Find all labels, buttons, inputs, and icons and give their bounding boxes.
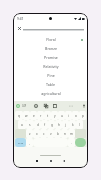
staticText: z [29,132,31,136]
staticText: e [33,114,35,118]
staticText: u [61,114,63,118]
button[interactable]: Close [16,25,23,32]
button[interactable]: ?123 [15,138,26,147]
button[interactable]: . [68,138,75,147]
staticText: , [29,141,30,145]
button[interactable]: Home [48,158,54,164]
staticText: m [70,132,73,136]
staticText: agricultural [41,91,61,96]
button[interactable]: d [34,120,41,129]
button[interactable]: Gboard [16,104,20,108]
staticText: g [51,123,53,127]
button[interactable]: Voice input [82,104,86,108]
staticText: h [58,123,60,127]
staticText: . [71,141,72,145]
button[interactable]: More options [69,104,73,108]
staticText: i [68,114,69,118]
button[interactable]: n [61,129,68,138]
staticText: 9:41 [17,17,24,21]
button[interactable]: e [30,111,37,120]
button[interactable]: u [58,111,65,120]
button[interactable]: l [76,120,83,129]
staticText: a [21,123,23,127]
button[interactable]: Enter [75,138,86,147]
staticText: t [47,114,49,118]
staticText: q [18,114,20,118]
button[interactable]: t [44,111,51,120]
button[interactable]: Back [61,158,67,164]
button[interactable]: p [79,111,86,120]
button[interactable]: Emoji [34,104,38,108]
staticText: ?123 [18,141,24,144]
button[interactable]: Pine [14,71,87,80]
staticText: Pine [47,73,55,78]
staticText: Relativity [43,64,59,69]
staticText: p [82,114,84,118]
staticText: GIF [22,104,27,108]
staticText: w [25,114,28,118]
button[interactable]: i [65,111,72,120]
staticText: d [37,123,39,127]
button[interactable]: agricultural [14,89,87,98]
button[interactable]: , [26,138,33,147]
button[interactable]: o [72,111,79,120]
button[interactable]: x [33,129,40,138]
staticText: c [43,132,45,136]
staticText: n [64,132,66,136]
button[interactable]: q [15,111,23,120]
button[interactable]: Stickers [44,104,48,108]
button[interactable]: a [18,120,26,129]
button[interactable]: Recents [34,158,40,164]
button[interactable]: g [48,120,55,129]
button[interactable]: w [23,111,30,120]
button[interactable]: Relativity [14,62,87,71]
button[interactable]: z [26,129,33,138]
button[interactable]: v [47,129,54,138]
staticText: o [75,114,77,118]
button[interactable]: Bronze [14,44,87,53]
button[interactable]: Clipboard [53,104,57,108]
button[interactable]: k [69,120,76,129]
staticText: s [29,123,31,127]
staticText: Promise [44,55,58,60]
button[interactable]: h [55,120,62,129]
staticText: Bronze [45,46,57,51]
button[interactable]: Floral [14,35,87,44]
staticText: k [72,123,74,127]
button[interactable]: r [37,111,44,120]
button[interactable]: f [41,120,48,129]
button[interactable]: j [62,120,69,129]
staticText: r [40,114,42,118]
button[interactable]: c [40,129,47,138]
button[interactable]: y [51,111,58,120]
staticText: y [54,114,56,118]
staticText: j [65,123,66,127]
staticText: v [50,132,52,136]
button[interactable]: m [68,129,75,138]
button[interactable]: b [54,129,61,138]
staticText: l [79,123,80,127]
staticText: f [44,123,46,127]
button[interactable]: s [26,120,34,129]
staticText: Floral [46,37,56,42]
button[interactable]: Table [14,80,87,89]
button[interactable]: Promise [14,53,87,62]
staticText: b [57,132,59,136]
staticText: x [36,132,38,136]
staticText: Table [46,82,55,87]
